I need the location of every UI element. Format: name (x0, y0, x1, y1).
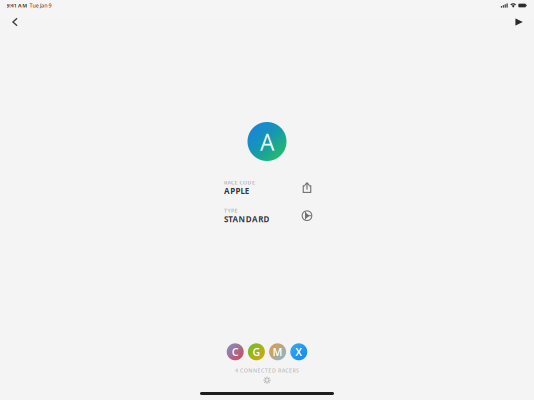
button[interactable]: Back (4, 12, 26, 32)
staticText: M (273, 345, 283, 359)
staticText: 9:41 AM (6, 2, 27, 9)
staticText: TYPE (224, 207, 237, 214)
staticText: Tue Jan 9 (29, 2, 51, 9)
staticText: 4 CONNECTED RACERS (235, 367, 299, 374)
staticText: RACE CODE (224, 179, 255, 186)
staticText: A (260, 127, 274, 157)
staticText: G (252, 345, 260, 359)
staticText: APPLE (224, 186, 249, 196)
staticText: STANDARD (224, 214, 269, 224)
staticText: C (232, 345, 239, 359)
button[interactable]: Start race (508, 12, 530, 32)
staticText: X (295, 345, 302, 359)
button[interactable]: Share race code (300, 180, 314, 194)
button[interactable]: Change race type (300, 209, 314, 223)
